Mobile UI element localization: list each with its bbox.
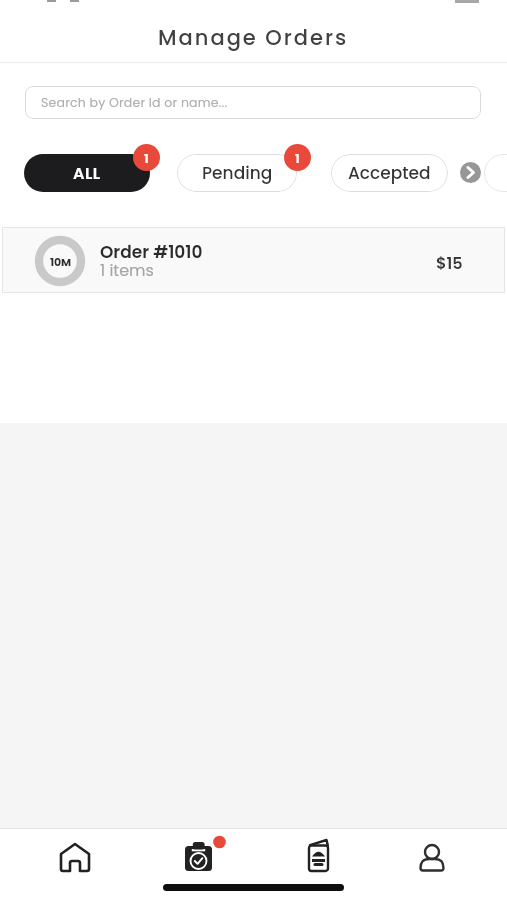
- button[interactable]: Search by Order Id or name...: [25, 86, 481, 119]
- staticText: ALL: [73, 162, 101, 184]
- button[interactable]: [412, 838, 452, 878]
- staticText: 1 items: [100, 259, 154, 281]
- staticText: Pending: [202, 161, 273, 185]
- button[interactable]: 10M: [2, 227, 505, 293]
- staticText: 10M: [50, 254, 71, 269]
- staticText: $15: [436, 252, 463, 274]
- button[interactable]: ALL: [24, 154, 150, 192]
- staticText: Order #1010: [100, 240, 203, 264]
- staticText: Accepted: [348, 161, 431, 185]
- staticText: 1: [144, 149, 149, 167]
- button[interactable]: Pending: [177, 154, 297, 192]
- button[interactable]: [178, 838, 226, 878]
- button[interactable]: [460, 162, 481, 183]
- button[interactable]: Accepted: [331, 154, 448, 192]
- staticText: Search by Order Id or name...: [41, 94, 228, 111]
- button[interactable]: [298, 838, 338, 878]
- button[interactable]: [55, 838, 95, 878]
- staticText: Manage Orders: [158, 23, 349, 52]
- staticText: 1: [295, 149, 300, 167]
